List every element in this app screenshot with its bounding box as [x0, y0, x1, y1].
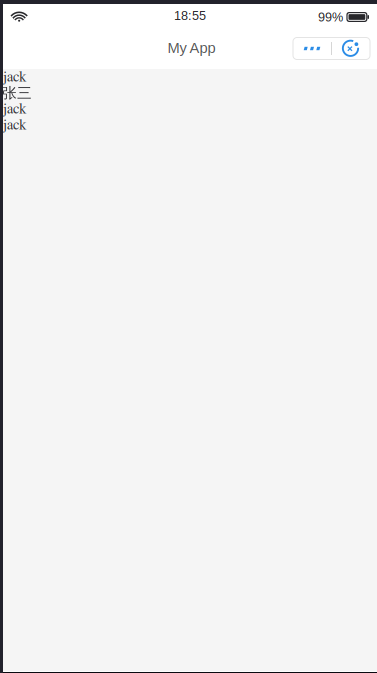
- button[interactable]: Mini program menu: [293, 37, 370, 59]
- staticText: jack: [2, 118, 27, 132]
- staticText: jack: [2, 70, 27, 84]
- staticText: 18:55: [174, 8, 206, 23]
- staticText: 99%: [318, 10, 343, 24]
- staticText: My App: [167, 40, 215, 56]
- staticText: jack: [2, 102, 27, 116]
- staticText: 张三: [2, 84, 32, 102]
